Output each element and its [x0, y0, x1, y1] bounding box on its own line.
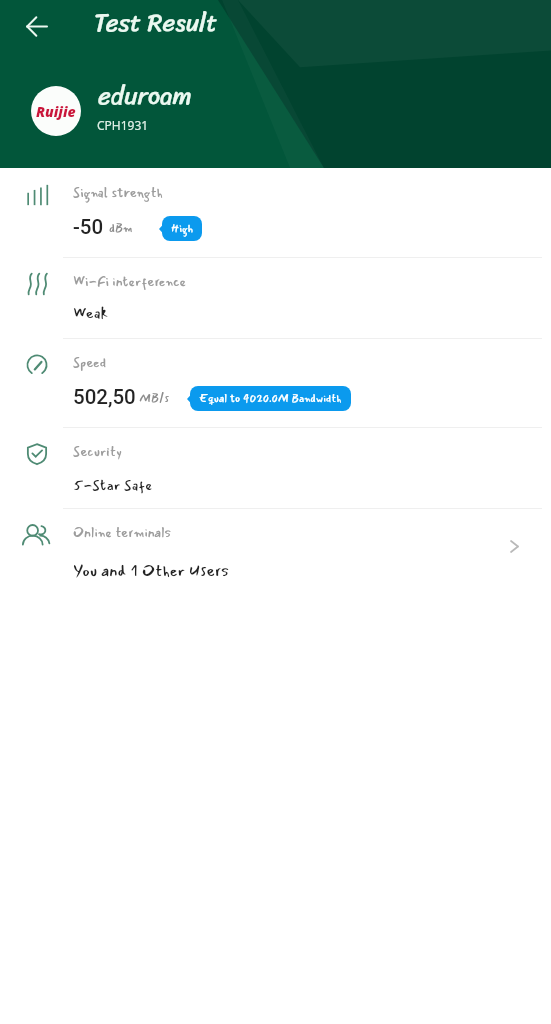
staticText: dBm: [109, 219, 133, 238]
button[interactable]: Open online terminals: [497, 529, 532, 564]
button[interactable]: Signal strength: [0, 168, 551, 257]
staticText: Test Result: [94, 0, 218, 44]
staticText: -50: [73, 215, 104, 239]
staticText: Signal strength: [73, 182, 163, 203]
staticText: eduroam: [98, 73, 192, 117]
staticText: MB/s: [139, 389, 170, 408]
button[interactable]: Speed: [0, 338, 551, 427]
button[interactable]: Online terminals: [0, 508, 551, 588]
staticText: You and 1 Other Users: [73, 558, 230, 583]
staticText: CPH1931: [97, 117, 149, 133]
staticText: Ruijie: [36, 102, 76, 121]
staticText: Weak: [73, 301, 109, 325]
staticText: Online terminals: [73, 522, 172, 543]
staticText: 502,50: [73, 385, 136, 409]
staticText: High: [171, 220, 193, 237]
staticText: Speed: [73, 352, 107, 373]
button[interactable]: Back: [15, 4, 59, 48]
button[interactable]: Security: [0, 427, 551, 508]
staticText: Equal to 4020.0M Bandwidth: [199, 390, 342, 407]
staticText: Wi-Fi interference: [73, 271, 187, 292]
button[interactable]: Wi-Fi interference: [0, 257, 551, 338]
staticText: Security: [73, 441, 122, 462]
staticText: 5-Star Safe: [73, 474, 153, 497]
